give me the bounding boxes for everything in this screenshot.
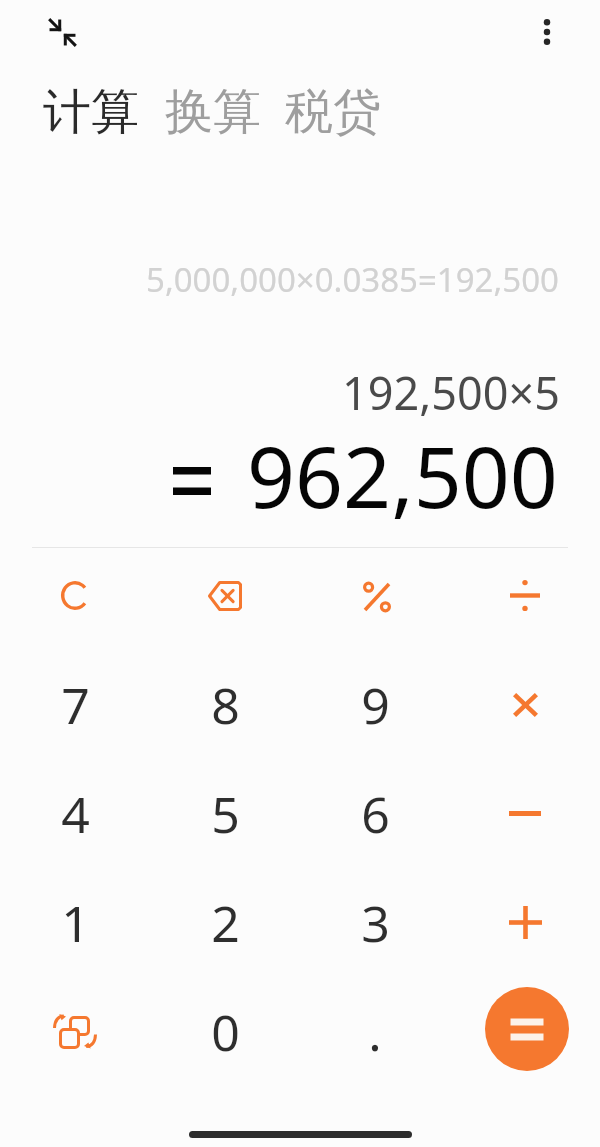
button[interactable]: 税贷 <box>285 82 381 142</box>
button[interactable]: . <box>300 977 450 1086</box>
staticText: 计算 <box>43 82 139 142</box>
button[interactable]: Multiply <box>450 650 600 759</box>
button[interactable]: Divide <box>450 541 600 650</box>
button[interactable]: 9 <box>300 650 450 759</box>
button[interactable]: Minus <box>450 759 600 868</box>
staticText: . <box>368 998 382 1066</box>
staticText: 8 <box>211 671 240 739</box>
staticText: 4 <box>61 780 90 848</box>
button[interactable]: 换算 <box>165 82 261 142</box>
button[interactable]: Collapse <box>40 10 84 54</box>
button[interactable]: 6 <box>300 759 450 868</box>
button[interactable]: 计算 <box>43 82 139 142</box>
staticText: 2 <box>211 889 240 957</box>
button[interactable]: 7 <box>0 650 150 759</box>
button[interactable]: Backspace <box>150 541 300 650</box>
staticText: 换算 <box>165 82 261 142</box>
button[interactable]: 3 <box>300 868 450 977</box>
button[interactable]: Percent <box>300 541 450 650</box>
button[interactable]: 8 <box>150 650 300 759</box>
staticText: 5,000,000×0.0385=192,500 <box>146 257 559 302</box>
button[interactable]: 0 <box>150 977 300 1086</box>
staticText: 0 <box>211 998 240 1066</box>
staticText: 1 <box>61 889 90 957</box>
staticText: 税贷 <box>285 82 381 142</box>
staticText: 6 <box>361 780 390 848</box>
button[interactable]: 2 <box>150 868 300 977</box>
button[interactable]: 1 <box>0 868 150 977</box>
staticText: 5 <box>211 780 240 848</box>
button[interactable]: Plus <box>450 868 600 977</box>
button[interactable]: Clear <box>0 541 150 650</box>
staticText: 192,500×5 <box>342 362 560 423</box>
staticText: 962,500 <box>247 418 558 532</box>
staticText: 3 <box>361 889 390 957</box>
button[interactable]: 4 <box>0 759 150 868</box>
staticText: 9 <box>361 671 390 739</box>
button[interactable]: Convert units <box>0 977 150 1086</box>
button[interactable]: More options <box>524 9 570 55</box>
staticText: 7 <box>61 671 90 739</box>
button[interactable]: Equals <box>485 987 569 1071</box>
button[interactable]: 5 <box>150 759 300 868</box>
